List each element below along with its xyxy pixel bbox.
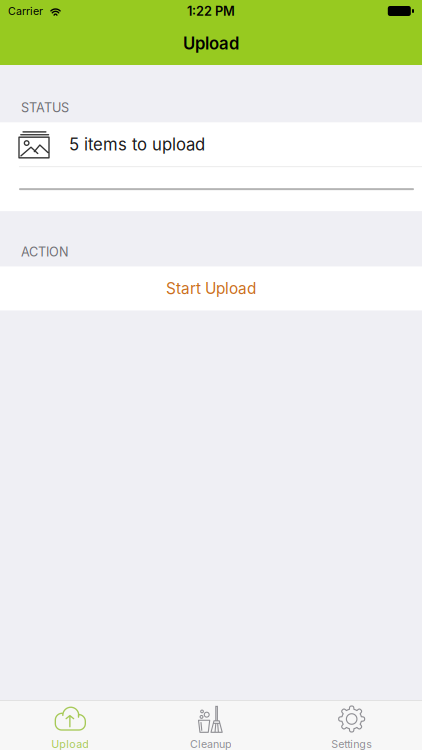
button[interactable]: 5 items to upload [0,122,422,166]
staticText: Upload [51,737,89,750]
staticText: 1:22 PM [187,3,235,19]
staticText: STATUS [21,100,69,115]
staticText: Cleanup [190,737,232,750]
staticText: Upload [183,33,239,54]
button[interactable]: Settings [281,701,422,750]
button[interactable]: Cleanup [141,701,281,750]
staticText: 5 items to upload [69,134,205,154]
staticText: Carrier [8,4,43,17]
button[interactable]: Upload [0,701,141,750]
button[interactable]: Start Upload [0,266,422,310]
staticText: Start Upload [166,279,256,298]
staticText: Settings [331,737,372,750]
staticText: ACTION [21,244,69,259]
